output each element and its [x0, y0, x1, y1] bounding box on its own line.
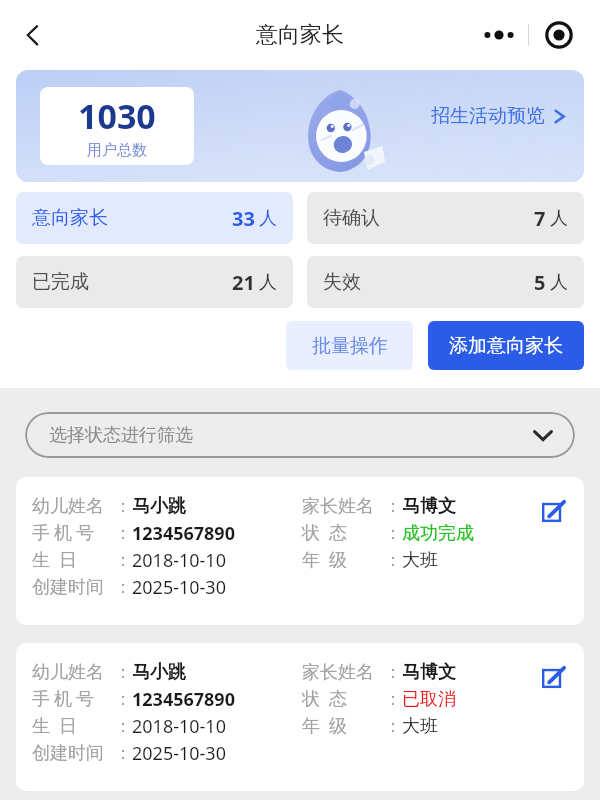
staticText: 批量操作 — [312, 334, 388, 358]
staticText: 手机号 — [32, 688, 114, 711]
staticText: 状态 — [302, 688, 384, 711]
button[interactable]: More — [470, 12, 528, 58]
staticText: 幼儿姓名 — [32, 661, 114, 684]
button[interactable]: 1030 — [16, 70, 584, 182]
staticText: 选择状态进行筛选 — [49, 424, 193, 447]
staticText: ： — [114, 576, 132, 599]
staticText: 生日 — [32, 715, 114, 738]
staticText: 马小跳 — [132, 495, 186, 518]
staticText: 马博文 — [402, 495, 456, 518]
staticText: ： — [384, 522, 402, 545]
button[interactable]: 招生活动预览 — [431, 104, 566, 128]
staticText: ： — [384, 661, 402, 684]
staticText: ： — [384, 549, 402, 572]
staticText: 2025-10-30 — [132, 741, 226, 766]
button[interactable]: Edit — [536, 659, 572, 695]
button[interactable]: 选择状态进行筛选 — [25, 412, 575, 458]
staticText: 用户总数 — [87, 141, 147, 160]
staticText: 大班 — [402, 715, 438, 738]
staticText: 7 — [534, 205, 546, 232]
staticText: 年级 — [302, 715, 384, 738]
staticText: 家长姓名 — [302, 661, 384, 684]
staticText: 添加意向家长 — [449, 334, 563, 358]
button[interactable]: 批量操作 — [286, 321, 413, 370]
button[interactable]: 幼儿姓名 — [16, 477, 584, 625]
staticText: 人 — [550, 271, 568, 294]
staticText: ： — [114, 495, 132, 518]
staticText: 意向家长 — [32, 206, 108, 230]
button[interactable]: Edit — [536, 493, 572, 529]
staticText: 1234567890 — [132, 521, 235, 546]
staticText: 1030 — [78, 93, 156, 139]
staticText: 2025-10-30 — [132, 575, 226, 600]
staticText: 幼儿姓名 — [32, 495, 114, 518]
staticText: ： — [114, 688, 132, 711]
staticText: 手机号 — [32, 522, 114, 545]
staticText: 人 — [259, 271, 277, 294]
staticText: 21 — [232, 269, 255, 296]
button[interactable]: Target — [529, 12, 588, 58]
staticText: 2018-10-10 — [132, 714, 226, 739]
staticText: 马小跳 — [132, 661, 186, 684]
staticText: 马博文 — [402, 661, 456, 684]
button[interactable]: 失效 — [307, 256, 584, 308]
staticText: 已取消 — [402, 688, 456, 711]
staticText: 待确认 — [323, 206, 380, 230]
staticText: 失效 — [323, 270, 361, 294]
staticText: 成功完成 — [402, 522, 474, 545]
button[interactable]: 添加意向家长 — [428, 321, 584, 370]
staticText: 5 — [534, 269, 546, 296]
staticText: ： — [114, 715, 132, 738]
staticText: 意向家长 — [256, 21, 344, 49]
staticText: 人 — [259, 207, 277, 230]
staticText: 招生活动预览 — [431, 104, 545, 128]
staticText: ： — [384, 688, 402, 711]
staticText: ： — [384, 715, 402, 738]
staticText: 创建时间 — [32, 576, 114, 599]
staticText: 已完成 — [32, 270, 89, 294]
staticText: ： — [114, 522, 132, 545]
staticText: 人 — [550, 207, 568, 230]
staticText: 大班 — [402, 549, 438, 572]
button[interactable]: 已完成 — [16, 256, 293, 308]
button[interactable]: 待确认 — [307, 192, 584, 244]
staticText: 2018-10-10 — [132, 548, 226, 573]
staticText: 状态 — [302, 522, 384, 545]
staticText: 家长姓名 — [302, 495, 384, 518]
staticText: 1234567890 — [132, 687, 235, 712]
staticText: 创建时间 — [32, 742, 114, 765]
staticText: 年级 — [302, 549, 384, 572]
staticText: ： — [114, 549, 132, 572]
staticText: 生日 — [32, 549, 114, 572]
staticText: ： — [114, 742, 132, 765]
button[interactable]: Back — [10, 12, 56, 58]
button[interactable]: 幼儿姓名 — [16, 643, 584, 791]
staticText: ： — [384, 495, 402, 518]
staticText: ： — [114, 661, 132, 684]
button[interactable]: 意向家长 — [16, 192, 293, 244]
staticText: 33 — [232, 205, 255, 232]
